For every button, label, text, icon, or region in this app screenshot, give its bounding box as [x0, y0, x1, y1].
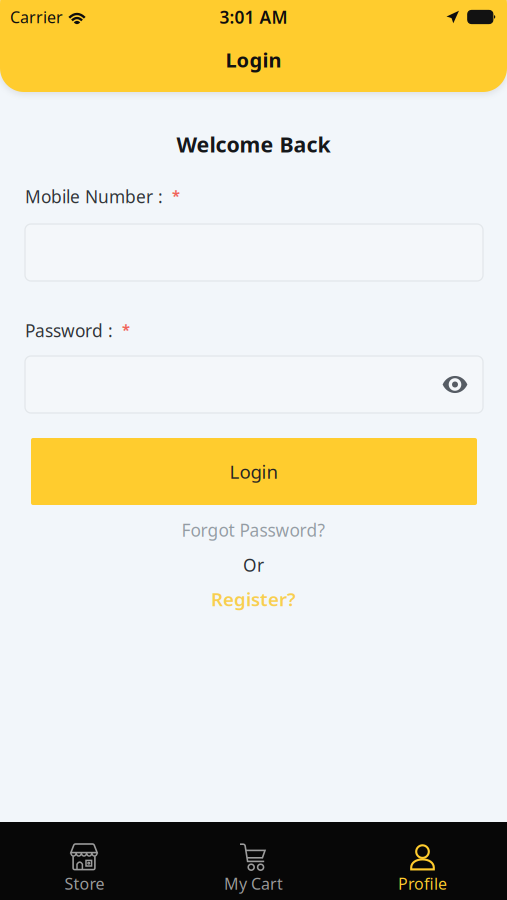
button[interactable]: Store	[0, 822, 169, 900]
staticText: Store	[64, 873, 104, 894]
staticText: Carrier	[10, 6, 63, 28]
button[interactable]: Password	[25, 356, 483, 413]
button[interactable]: My Cart	[169, 822, 338, 900]
staticText: Or	[243, 553, 264, 576]
staticText: Login	[225, 46, 281, 73]
staticText: 3:01 AM	[219, 5, 287, 28]
staticText: Login	[229, 459, 278, 484]
staticText: Password :	[25, 319, 113, 342]
staticText: Mobile Number :	[25, 185, 163, 208]
staticText: Profile	[398, 873, 447, 894]
staticText: Forgot Password?	[181, 518, 325, 541]
button[interactable]: Profile	[338, 822, 507, 900]
button[interactable]: Login	[31, 438, 477, 505]
staticText: My Cart	[224, 873, 283, 894]
staticText: Welcome Back	[176, 130, 330, 158]
staticText: Register?	[211, 587, 296, 611]
button[interactable]: Show password	[432, 365, 478, 404]
button[interactable]: Forgot Password?	[0, 517, 507, 543]
staticText: *	[122, 320, 130, 339]
button[interactable]: Register?	[0, 586, 507, 612]
staticText: *	[172, 186, 180, 205]
